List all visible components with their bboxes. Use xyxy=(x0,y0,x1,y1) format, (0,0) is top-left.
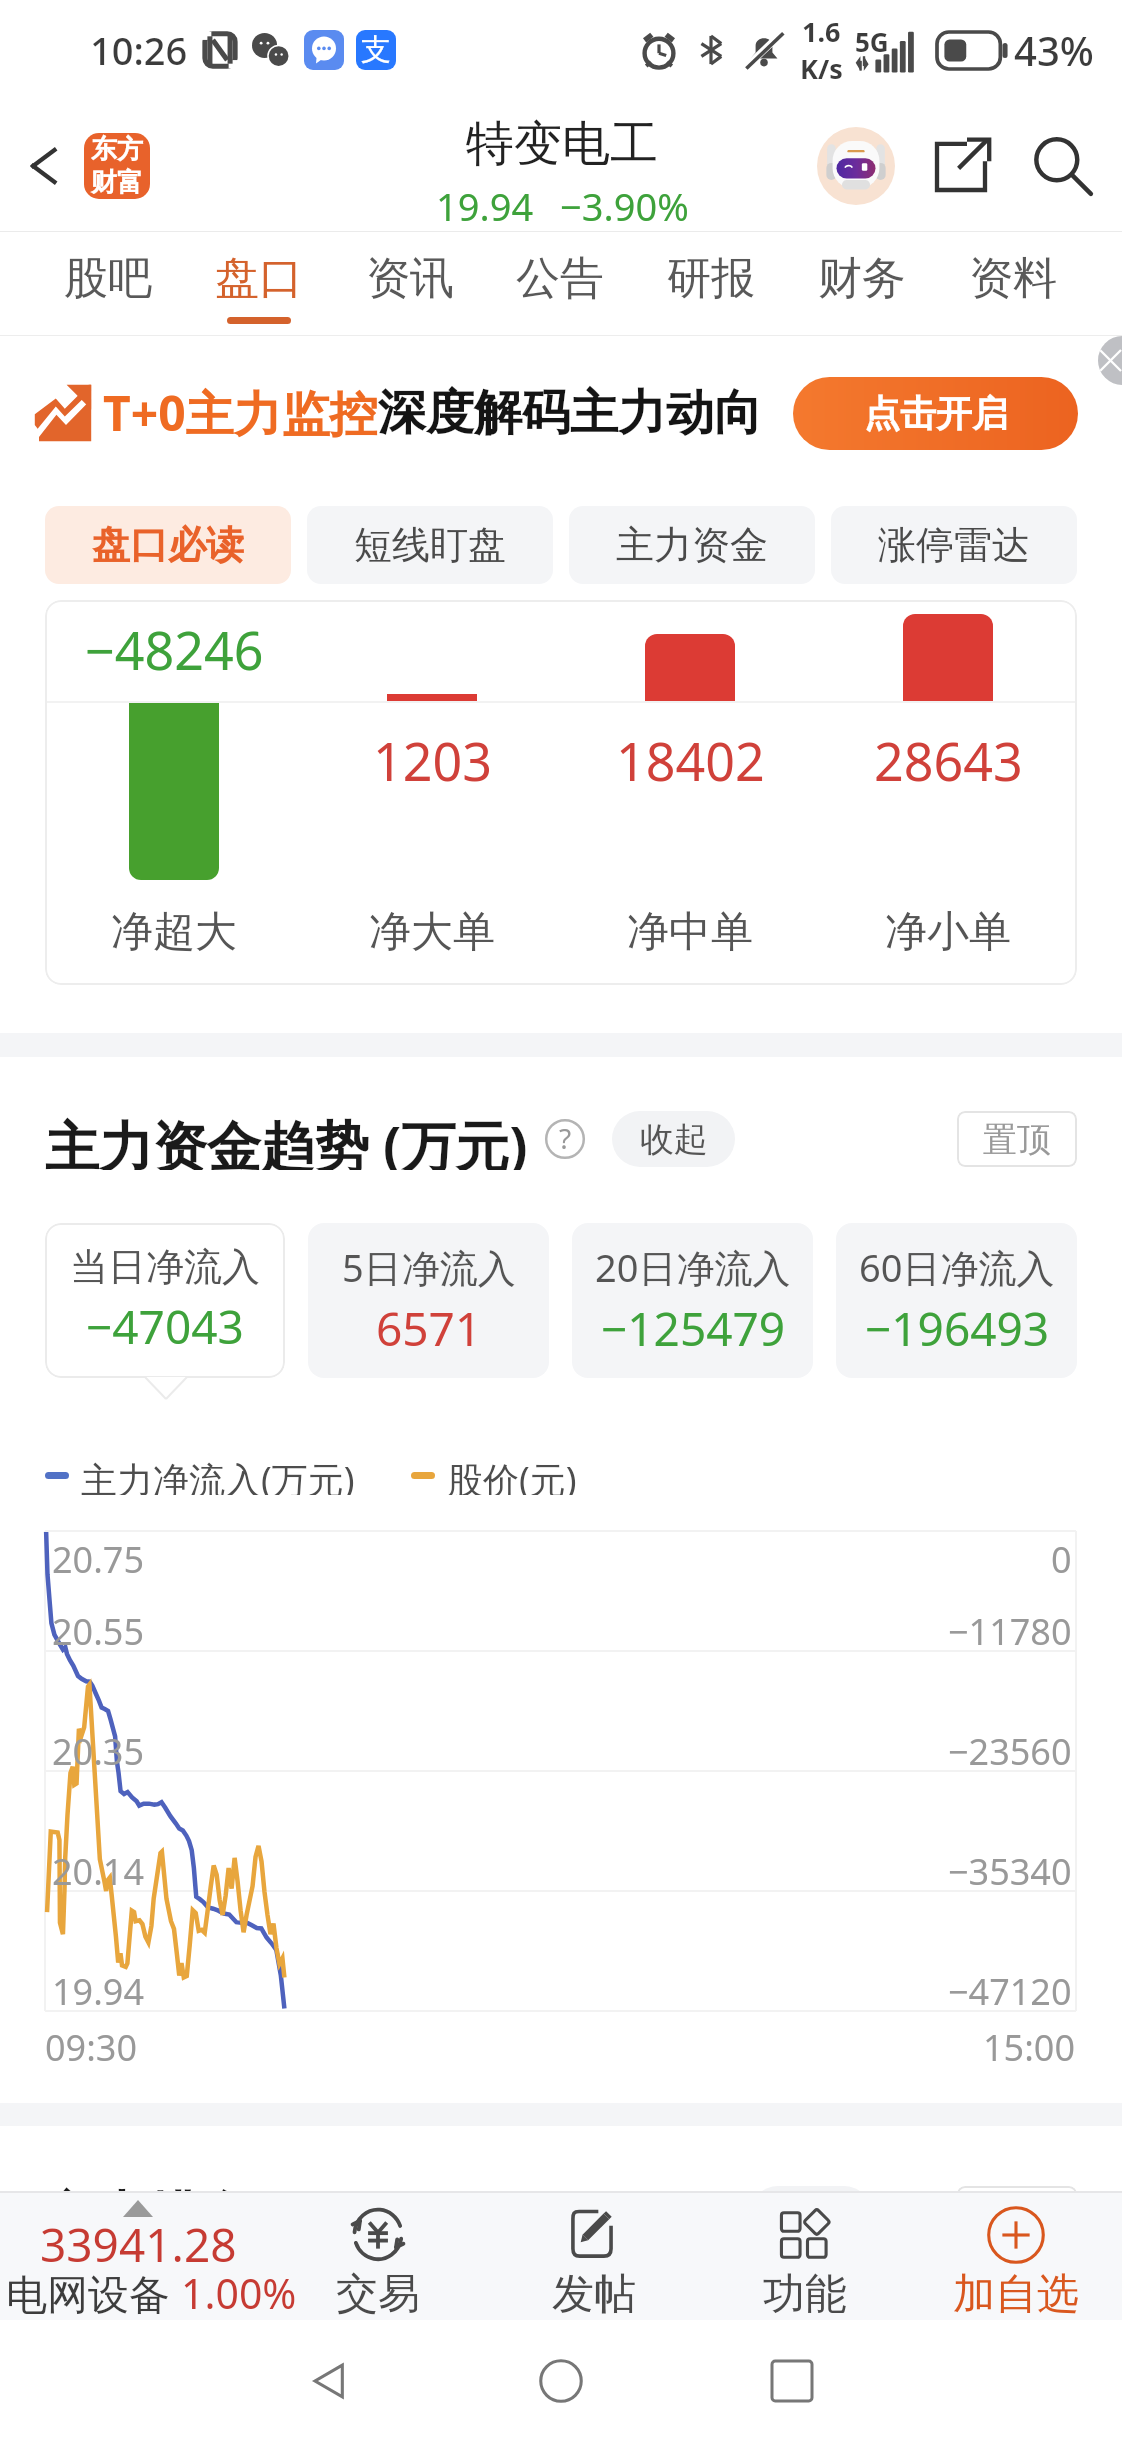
staticText: 加自选 xyxy=(953,2268,1079,2320)
staticText: 主力资金趋势 (万元) xyxy=(45,1108,528,1170)
staticText: −47120 xyxy=(948,1967,1072,2016)
button[interactable]: 盘口 xyxy=(193,232,325,336)
staticText: 特变电工 xyxy=(466,114,658,174)
staticText: K/s xyxy=(800,50,843,87)
button[interactable]: 发帖 xyxy=(502,2193,686,2320)
staticText: 短线盯盘 xyxy=(354,521,506,569)
button[interactable]: 涨停雷达 xyxy=(831,506,1077,584)
staticText: 发帖 xyxy=(552,2268,636,2320)
staticText: 主力净流入(万元) xyxy=(81,1455,355,1495)
staticText: 盘口必读 xyxy=(92,521,244,569)
staticText: 深度解码主力动向 xyxy=(378,383,762,443)
staticText: 15:00 xyxy=(983,2023,1076,2072)
staticText: 18402 xyxy=(616,725,765,796)
staticText: −196493 xyxy=(865,1297,1050,1360)
staticText: 东方 xyxy=(91,133,143,166)
staticText: 20.35 xyxy=(52,1727,145,1776)
staticText: 资料 xyxy=(969,251,1057,306)
staticText: 股吧 xyxy=(64,251,152,306)
staticText: −3.90% xyxy=(560,180,689,232)
staticText: −48246 xyxy=(85,614,264,685)
staticText: 收起 xyxy=(640,1118,708,1161)
staticText: 净小单 xyxy=(885,906,1011,959)
button[interactable]: 公告 xyxy=(494,232,626,336)
staticText: 当日净流入 xyxy=(70,1243,260,1291)
button[interactable]: 置顶 xyxy=(957,1111,1077,1167)
button[interactable]: 资料 xyxy=(947,232,1079,336)
button[interactable]: 点击开启 xyxy=(793,377,1078,450)
staticText: 主力资金 xyxy=(616,521,768,569)
staticText: 盘口 xyxy=(215,251,303,306)
staticText: 涨停雷达 xyxy=(878,521,1030,569)
staticText: 1203 xyxy=(373,725,492,796)
staticText: 置顶 xyxy=(983,1118,1051,1161)
staticText: T+0主力监控 xyxy=(103,380,378,446)
staticText: 支 xyxy=(361,31,391,69)
staticText: −125479 xyxy=(601,1297,786,1360)
button[interactable]: Back xyxy=(285,2336,375,2426)
staticText: 5G xyxy=(855,24,889,59)
button[interactable]: 功能 xyxy=(713,2193,897,2320)
button[interactable]: 收起 xyxy=(612,1111,735,1167)
button[interactable]: 33941.28 xyxy=(0,2193,300,2320)
staticText: −11780 xyxy=(948,1607,1072,1656)
button[interactable]: 当日净流入 xyxy=(45,1223,285,1378)
button[interactable]: 加自选 xyxy=(924,2193,1108,2320)
staticText: 净中单 xyxy=(627,906,753,959)
button[interactable]: 60日净流入 xyxy=(836,1223,1077,1378)
button[interactable]: 置顶 xyxy=(957,2186,1077,2191)
staticText: −23560 xyxy=(948,1727,1072,1776)
staticText: 功能 xyxy=(763,2268,847,2320)
button[interactable]: Share xyxy=(915,120,1007,212)
staticText: 19.94 xyxy=(52,1967,145,2016)
staticText: 20日净流入 xyxy=(595,1241,791,1293)
staticText: 0 xyxy=(1051,1535,1072,1584)
button[interactable]: AI Assistant xyxy=(809,119,903,213)
staticText: 研报 xyxy=(667,251,755,306)
button[interactable]: 资讯 xyxy=(344,232,476,336)
button[interactable]: 20日净流入 xyxy=(572,1223,813,1378)
button[interactable]: 股吧 xyxy=(42,232,174,336)
staticText: 6571 xyxy=(376,1297,482,1360)
staticText: 财富 xyxy=(91,166,143,199)
staticText: 电网设备 xyxy=(6,2265,181,2321)
staticText: 净大单 xyxy=(369,906,495,959)
staticText: 09:30 xyxy=(45,2023,138,2072)
button[interactable]: Recents xyxy=(747,2336,837,2426)
staticText: ? xyxy=(559,1119,572,1157)
staticText: 43% xyxy=(1014,23,1094,77)
staticText: 33941.28 xyxy=(40,2213,237,2276)
button[interactable]: Help xyxy=(544,1118,586,1160)
button[interactable]: 短线盯盘 xyxy=(307,506,553,584)
staticText: 19.94 xyxy=(436,180,534,232)
staticText: 10:26 xyxy=(90,24,188,76)
button[interactable]: 盘口必读 xyxy=(45,506,291,584)
button[interactable]: 收起 xyxy=(750,2186,872,2191)
staticText: 财务 xyxy=(818,251,906,306)
button[interactable]: Search xyxy=(1017,120,1109,212)
staticText: 5日净流入 xyxy=(342,1241,516,1293)
button[interactable]: 交易 xyxy=(286,2193,470,2320)
staticText: 点击开启 xyxy=(864,391,1008,436)
staticText: 60日净流入 xyxy=(859,1241,1055,1293)
button[interactable]: Home xyxy=(516,2336,606,2426)
staticText: 公告 xyxy=(516,251,604,306)
staticText: 股价(元) xyxy=(447,1455,577,1495)
button[interactable]: Close xyxy=(1098,336,1122,385)
staticText: 1.00% xyxy=(181,2265,297,2321)
staticText: 20.75 xyxy=(52,1535,145,1584)
button[interactable]: 东方财富 xyxy=(84,133,150,199)
staticText: −47043 xyxy=(86,1295,244,1358)
staticText: 资讯 xyxy=(366,251,454,306)
staticText: 20.14 xyxy=(52,1847,145,1896)
button[interactable]: 研报 xyxy=(645,232,777,336)
button[interactable]: Back xyxy=(0,100,88,232)
staticText: 交易 xyxy=(336,2268,420,2320)
button[interactable]: 主力资金 xyxy=(569,506,815,584)
button[interactable]: 财务 xyxy=(796,232,928,336)
staticText: 20.55 xyxy=(52,1607,145,1656)
staticText: 主力排名 (万元) xyxy=(45,2178,406,2191)
staticText: −35340 xyxy=(948,1847,1072,1896)
staticText: 净超大 xyxy=(111,906,237,959)
button[interactable]: 5日净流入 xyxy=(308,1223,549,1378)
